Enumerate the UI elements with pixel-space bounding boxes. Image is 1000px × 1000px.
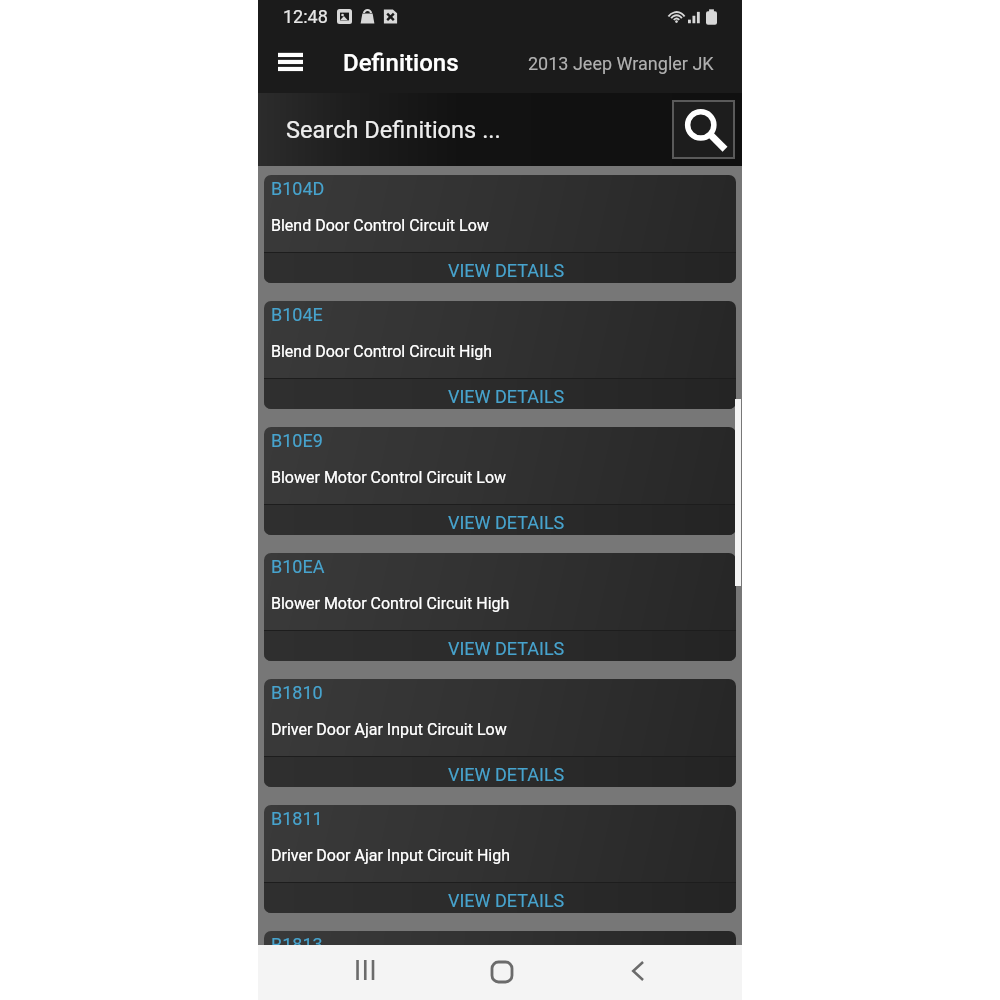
- button[interactable]: VIEW DETAILS: [264, 631, 736, 661]
- staticText: Blower Motor Control Circuit Low: [271, 468, 507, 487]
- button[interactable]: B104D: [264, 175, 736, 283]
- staticText: VIEW DETAILS: [448, 890, 565, 911]
- staticText: Driver Door Ajar Input Circuit Low: [271, 720, 507, 739]
- staticText: B10E9: [271, 430, 323, 451]
- button[interactable]: VIEW DETAILS: [264, 505, 736, 535]
- button[interactable]: B104E: [264, 301, 736, 409]
- staticText: Driver Door Ajar Input Circuit Open: [271, 972, 515, 982]
- staticText: Driver Door Ajar Input Circuit High: [271, 846, 510, 865]
- staticText: B1811: [271, 808, 323, 829]
- button[interactable]: B1810: [264, 679, 736, 787]
- button[interactable]: Recent apps: [339, 946, 393, 1000]
- button[interactable]: Search: [673, 101, 734, 158]
- staticText: B10EA: [271, 556, 325, 577]
- button[interactable]: VIEW DETAILS: [264, 883, 736, 913]
- button[interactable]: B10E9: [264, 427, 736, 535]
- staticText: VIEW DETAILS: [448, 764, 565, 785]
- button[interactable]: B1813: [264, 931, 736, 982]
- staticText: VIEW DETAILS: [448, 260, 565, 281]
- staticText: B1810: [271, 682, 323, 703]
- button[interactable]: VIEW DETAILS: [264, 757, 736, 787]
- staticText: B104D: [271, 178, 325, 199]
- staticText: VIEW DETAILS: [448, 386, 565, 407]
- staticText: Blend Door Control Circuit High: [271, 342, 493, 361]
- staticText: VIEW DETAILS: [448, 638, 565, 659]
- button[interactable]: VIEW DETAILS: [264, 253, 736, 283]
- staticText: Blower Motor Control Circuit High: [271, 594, 510, 613]
- button[interactable]: Home: [473, 946, 527, 1000]
- staticText: B1813: [271, 934, 323, 955]
- button[interactable]: VIEW DETAILS: [264, 379, 736, 409]
- staticText: Search Definitions ...: [286, 116, 501, 144]
- staticText: B104E: [271, 304, 323, 325]
- button[interactable]: Open navigation menu: [266, 39, 314, 87]
- button[interactable]: Back: [608, 946, 662, 1000]
- staticText: 12:48: [283, 6, 328, 27]
- staticText: Blend Door Control Circuit Low: [271, 216, 489, 235]
- staticText: Definitions: [343, 49, 459, 77]
- staticText: 2013 Jeep Wrangler JK: [528, 53, 714, 74]
- button[interactable]: B1811: [264, 805, 736, 913]
- button[interactable]: B10EA: [264, 553, 736, 661]
- staticText: VIEW DETAILS: [448, 512, 565, 533]
